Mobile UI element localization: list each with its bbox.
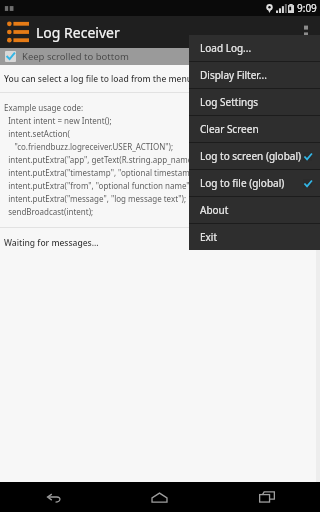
staticText: intent.putExtra("timestamp", "optional t… xyxy=(4,167,205,178)
staticText: intent.putExtra("from", "optional functi… xyxy=(4,180,195,191)
button[interactable]: Exit xyxy=(189,224,320,250)
staticText: Load Log... xyxy=(200,41,252,55)
staticText: intent.putExtra("message", "log message … xyxy=(4,193,187,204)
button[interactable]: Home xyxy=(106,482,213,512)
staticText: Log to file (global) xyxy=(200,176,285,190)
staticText: Example usage code: xyxy=(4,102,84,113)
button[interactable]: Log to screen (global) xyxy=(189,143,320,169)
staticText: Display Filter... xyxy=(200,68,267,82)
staticText: intent.putExtra("app", getText(R.string.… xyxy=(4,154,202,165)
button[interactable]: Display Filter... xyxy=(189,62,320,88)
staticText: You can select a log file to load from t… xyxy=(4,73,195,85)
button[interactable]: About xyxy=(189,197,320,223)
button[interactable]: Log Settings xyxy=(189,89,320,115)
staticText: Log to screen (global) xyxy=(200,149,301,163)
staticText: "co.friendbuzz.logreceiver.USER_ACTION")… xyxy=(4,141,174,152)
staticText: intent.setAction( xyxy=(4,128,70,139)
staticText: Clear Screen xyxy=(200,122,259,136)
staticText: Keep scrolled to bottom xyxy=(22,50,129,63)
staticText: Exit xyxy=(200,230,218,244)
staticText: sendBroadcast(intent); xyxy=(4,206,94,217)
button[interactable]: App icon xyxy=(7,21,29,43)
staticText: Intent intent = new Intent(); xyxy=(4,115,112,126)
button[interactable]: Recent apps xyxy=(213,482,320,512)
staticText: About xyxy=(200,203,229,217)
button[interactable]: Clear Screen xyxy=(189,116,320,142)
staticText: Waiting for messages... xyxy=(4,237,99,249)
staticText: Log Receiver xyxy=(36,23,120,42)
button[interactable]: Keep scrolled to bottom xyxy=(0,48,320,65)
button[interactable]: Log to file (global) xyxy=(189,170,320,196)
button[interactable]: More options xyxy=(292,16,320,48)
button[interactable]: Load Log... xyxy=(189,35,320,61)
staticText: Log Settings xyxy=(200,95,259,109)
staticText: 9:09 xyxy=(297,1,317,15)
button[interactable]: Back xyxy=(0,482,106,512)
